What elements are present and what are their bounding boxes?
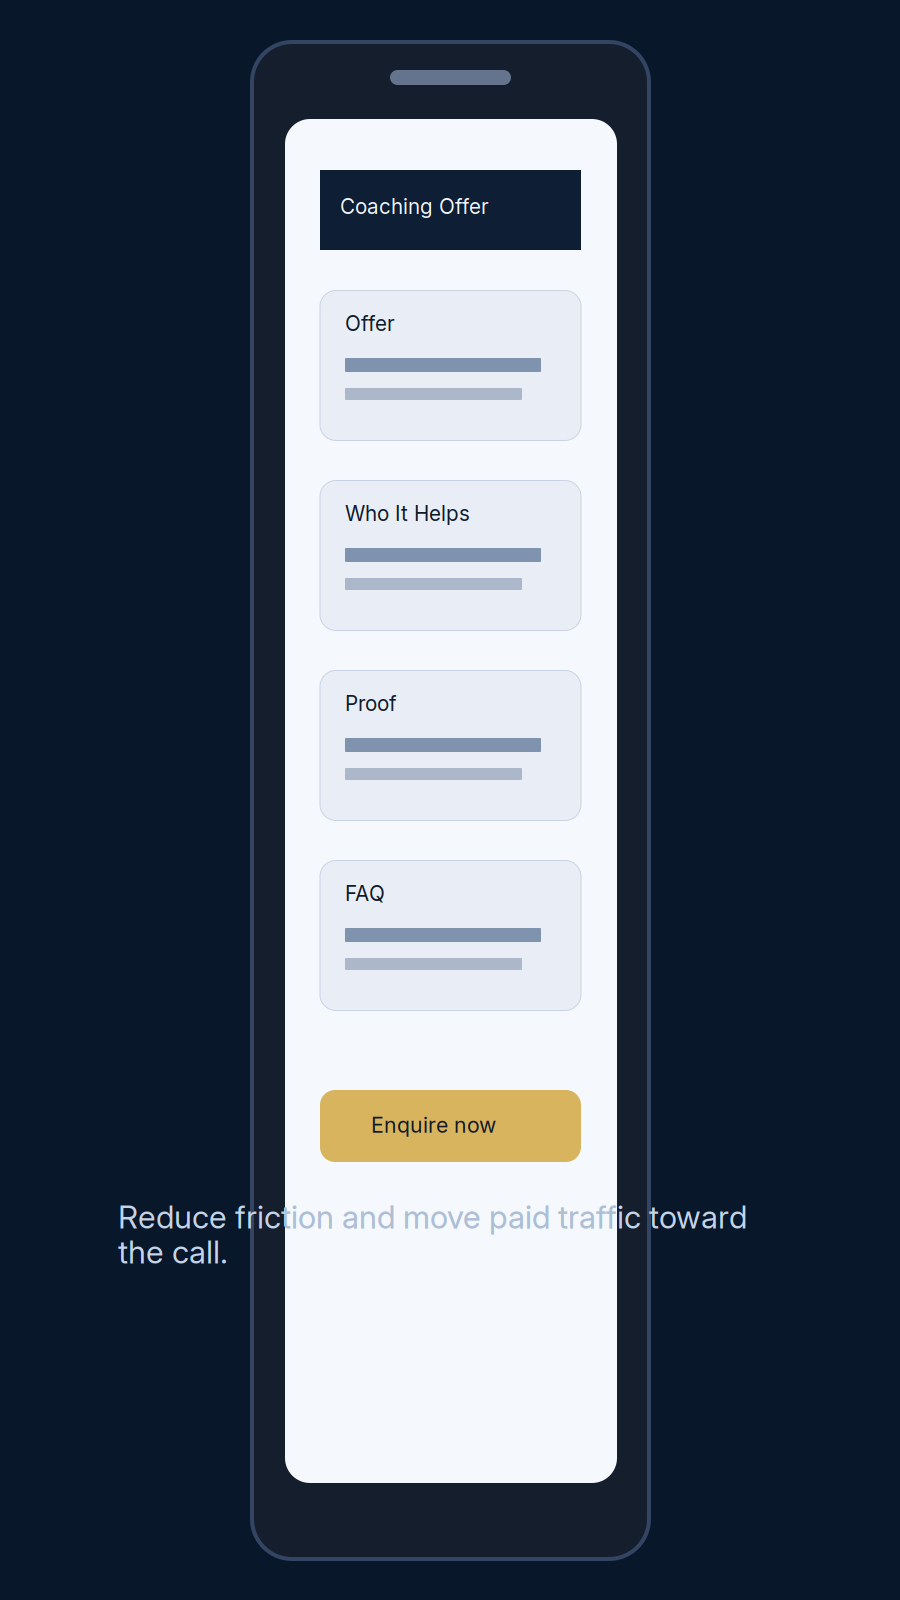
staticText: Proof xyxy=(345,691,397,716)
staticText: Coaching Offer xyxy=(340,194,489,219)
button[interactable]: FAQ xyxy=(320,860,581,1010)
staticText: Who It Helps xyxy=(345,501,470,526)
staticText: the call. xyxy=(118,1233,228,1271)
button[interactable]: Offer xyxy=(320,290,581,440)
staticText: Reduce friction and move paid traffic to… xyxy=(118,1198,747,1236)
staticText: FAQ xyxy=(345,881,385,906)
button[interactable]: Who It Helps xyxy=(320,480,581,630)
staticText: Reduce friction and move paid traffic to… xyxy=(118,1198,747,1236)
staticText: Offer xyxy=(345,311,395,336)
button[interactable]: Proof xyxy=(320,670,581,820)
staticText: Enquire now xyxy=(371,1112,496,1138)
button[interactable]: Enquire now xyxy=(320,1090,581,1162)
staticText: the call. xyxy=(118,1233,228,1271)
